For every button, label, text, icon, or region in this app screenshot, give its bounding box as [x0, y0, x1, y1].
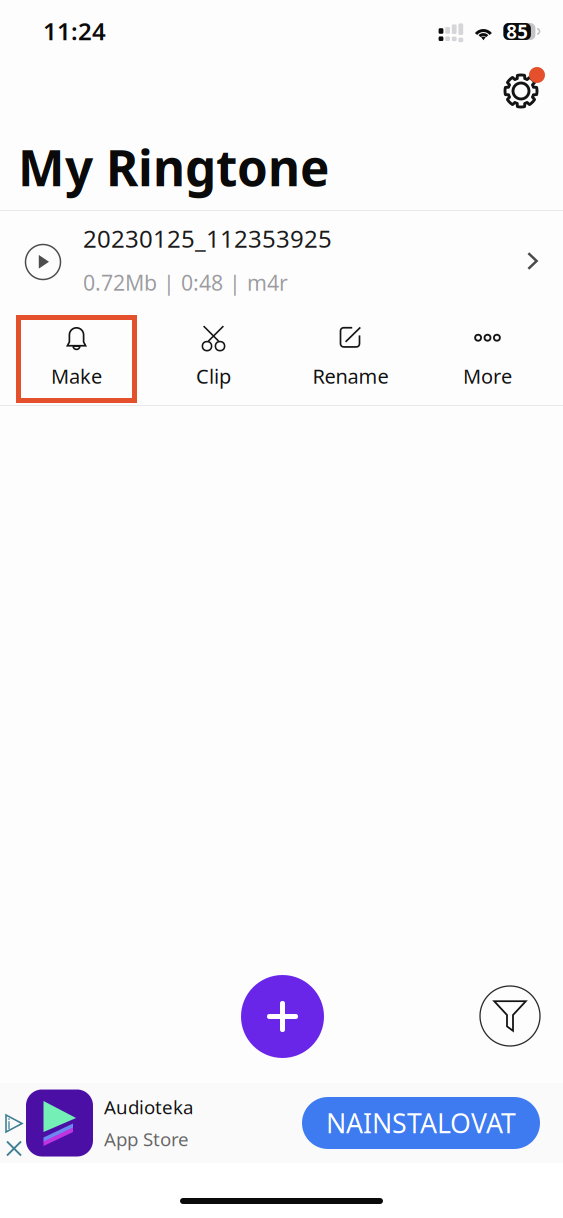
- button[interactable]: Make: [8, 308, 145, 405]
- staticText: More: [463, 363, 512, 389]
- staticText: 85: [506, 19, 528, 44]
- button[interactable]: Add ringtone: [241, 975, 324, 1058]
- staticText: Audioteka: [104, 1095, 193, 1119]
- staticText: i: [7, 1114, 11, 1133]
- button[interactable]: Clip: [145, 308, 282, 405]
- staticText: Make: [51, 363, 102, 389]
- staticText: 11:24: [43, 15, 106, 47]
- button[interactable]: Rename: [282, 308, 419, 405]
- button[interactable]: 20230125_112353925: [0, 211, 563, 308]
- button[interactable]: Settings: [496, 66, 546, 116]
- button[interactable]: More: [419, 308, 556, 405]
- staticText: 20230125_112353925: [83, 222, 332, 254]
- staticText: Clip: [196, 363, 231, 389]
- staticText: NAINSTALOVAT: [326, 1105, 516, 1141]
- staticText: Rename: [312, 363, 388, 389]
- staticText: 0.72Mb | 0:48 | m4r: [83, 268, 288, 297]
- button[interactable]: NAINSTALOVAT: [302, 1097, 540, 1149]
- staticText: My Ringtone: [18, 134, 329, 200]
- staticText: App Store: [104, 1126, 189, 1151]
- button[interactable]: Filter: [480, 986, 540, 1046]
